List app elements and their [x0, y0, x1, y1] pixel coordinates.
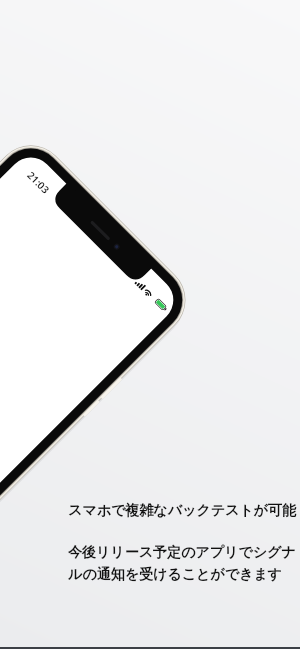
- staticText: スマホで複雑なバックテストが可能: [68, 502, 296, 520]
- staticText: 今後リリース予定のアプリでシグナ ルの通知を受けることができます: [68, 544, 296, 583]
